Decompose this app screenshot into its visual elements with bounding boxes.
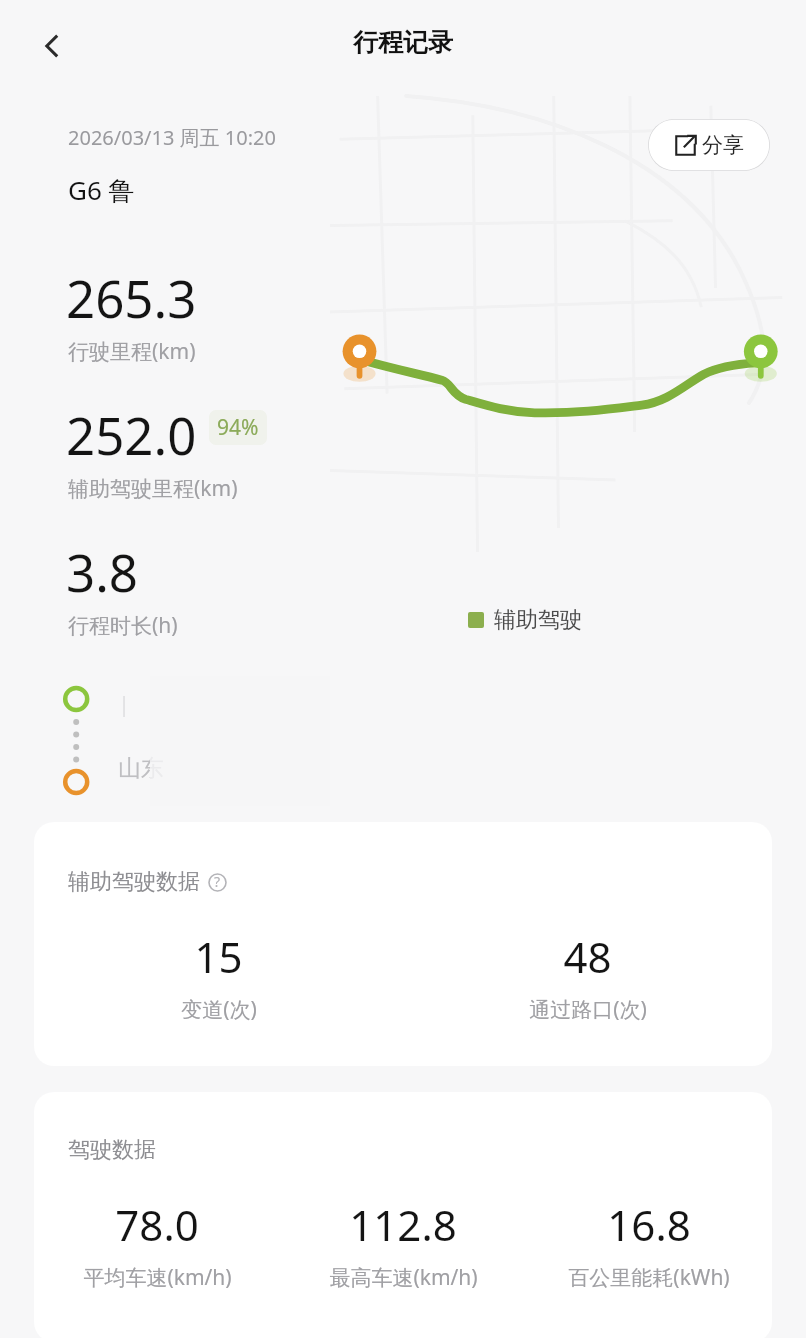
staticText: 变道(次) <box>181 995 257 1024</box>
staticText: 15 <box>194 928 243 985</box>
staticText: 通过路口(次) <box>529 995 647 1024</box>
button[interactable]: 驾驶数据 <box>34 1092 772 1338</box>
staticText: 2026/03/13 周五 10:20 <box>68 124 276 151</box>
staticText: G6 鲁 <box>68 172 135 208</box>
staticText: 百公里能耗(kWh) <box>568 1263 730 1292</box>
staticText: 16.8 <box>607 1196 691 1253</box>
staticText: 252.0 <box>66 400 197 469</box>
staticText: 辅助驾驶 <box>494 606 582 634</box>
staticText: 辅助驾驶数据 <box>68 868 200 896</box>
button[interactable]: Back <box>24 18 80 74</box>
staticText: 48 <box>563 928 612 985</box>
staticText: 山东 <box>118 754 164 783</box>
staticText: 辅助驾驶里程(km) <box>68 474 238 503</box>
staticText: 行程记录 <box>353 27 453 58</box>
button[interactable]: 辅助驾驶数据 <box>34 822 772 1066</box>
staticText: 行驶里程(km) <box>68 337 196 366</box>
staticText: 3.8 <box>66 537 139 606</box>
staticText: 112.8 <box>349 1196 457 1253</box>
staticText: 最高车速(km/h) <box>329 1263 478 1292</box>
staticText: 分享 <box>702 132 744 158</box>
staticText: 平均车速(km/h) <box>83 1263 232 1292</box>
staticText: 94% <box>217 413 259 442</box>
staticText: | <box>118 688 131 718</box>
staticText: 驾驶数据 <box>68 1136 156 1164</box>
staticText: 78.0 <box>115 1196 199 1253</box>
staticText: 265.3 <box>66 263 197 332</box>
button[interactable]: 分享 <box>648 119 770 171</box>
staticText: ? <box>214 872 221 891</box>
staticText: 行程时长(h) <box>68 611 178 640</box>
